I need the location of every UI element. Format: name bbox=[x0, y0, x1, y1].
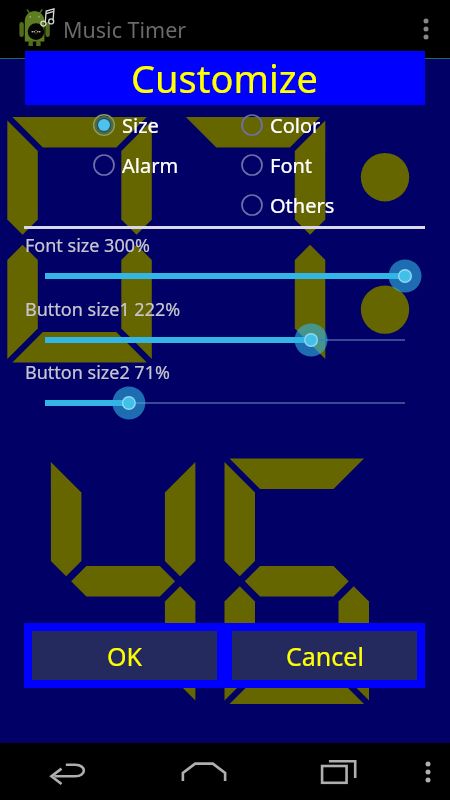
button[interactable]: Color bbox=[238, 105, 321, 145]
button[interactable]: Alarm bbox=[90, 145, 179, 185]
button[interactable]: More options bbox=[408, 0, 444, 58]
staticText: Button size2 71% bbox=[25, 360, 170, 385]
staticText: Size bbox=[122, 112, 159, 139]
button[interactable]: Others bbox=[238, 185, 335, 225]
staticText: Cancel bbox=[286, 639, 364, 673]
button[interactable]: Cancel bbox=[232, 631, 417, 680]
staticText: Customize bbox=[131, 52, 319, 104]
button[interactable]: Back bbox=[0, 743, 136, 800]
staticText: Others bbox=[270, 192, 335, 219]
staticText: Font bbox=[270, 152, 313, 179]
button[interactable]: Button size1 222% bbox=[0, 297, 450, 353]
staticText: Font size 300% bbox=[25, 233, 150, 258]
button[interactable]: Home bbox=[136, 743, 271, 800]
button[interactable]: Font bbox=[238, 145, 313, 185]
button[interactable]: Music Timer bbox=[0, 0, 450, 58]
button[interactable]: Size bbox=[90, 105, 159, 145]
button[interactable]: Recent apps bbox=[271, 743, 406, 800]
staticText: OK bbox=[107, 639, 143, 673]
button[interactable]: Menu bbox=[406, 743, 450, 800]
button[interactable]: OK bbox=[32, 631, 217, 680]
staticText: Color bbox=[270, 112, 321, 139]
staticText: Music Timer bbox=[63, 15, 187, 44]
button[interactable]: Font size 300% bbox=[0, 233, 450, 289]
staticText: Button size1 222% bbox=[25, 297, 181, 322]
button[interactable]: Customize bbox=[25, 51, 425, 105]
button[interactable]: Button size2 71% bbox=[0, 360, 450, 416]
staticText: Alarm bbox=[122, 152, 179, 179]
